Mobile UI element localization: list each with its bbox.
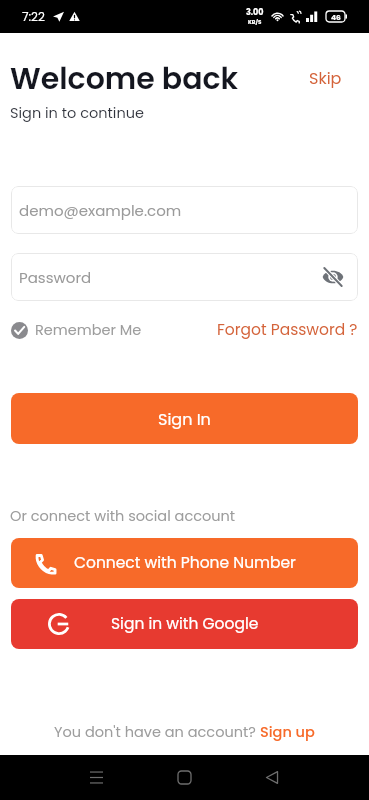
button[interactable]: Sign In [11, 393, 358, 444]
button[interactable]: Sign up [260, 722, 315, 742]
staticText: Welcome back [10, 58, 239, 100]
staticText: Skip [309, 67, 342, 89]
staticText: Connect with Phone Number [74, 552, 296, 574]
staticText: Sign In [158, 408, 211, 430]
staticText: Sign up [260, 722, 315, 742]
button[interactable]: Skip [305, 62, 346, 94]
staticText: Sign in with Google [111, 613, 259, 635]
staticText: Password [19, 267, 92, 288]
staticText: Or connect with social account [10, 506, 236, 526]
staticText: 7:22 [22, 8, 45, 25]
button[interactable]: Sign in with Google [11, 599, 358, 649]
staticText: Sign in to continue [10, 103, 144, 123]
staticText: 46 [331, 12, 341, 22]
staticText: You don't have an account? [54, 722, 260, 742]
button[interactable]: Password [11, 253, 358, 301]
button[interactable]: Home [166, 759, 203, 796]
button[interactable]: demo@example.com [11, 186, 358, 234]
button[interactable]: Back [254, 759, 290, 796]
staticText: Forgot Password ? [217, 319, 358, 341]
staticText: demo@example.com [19, 200, 182, 221]
button[interactable]: Recent apps [78, 759, 115, 796]
staticText: Remember Me [35, 320, 142, 340]
button[interactable]: Remember Me [11, 320, 142, 340]
button[interactable]: Show password [321, 265, 345, 289]
button[interactable]: Forgot Password ? [217, 319, 358, 341]
staticText: KB/S [248, 18, 262, 26]
button[interactable]: Connect with Phone Number [11, 538, 358, 588]
staticText: 3.00 [246, 7, 264, 18]
